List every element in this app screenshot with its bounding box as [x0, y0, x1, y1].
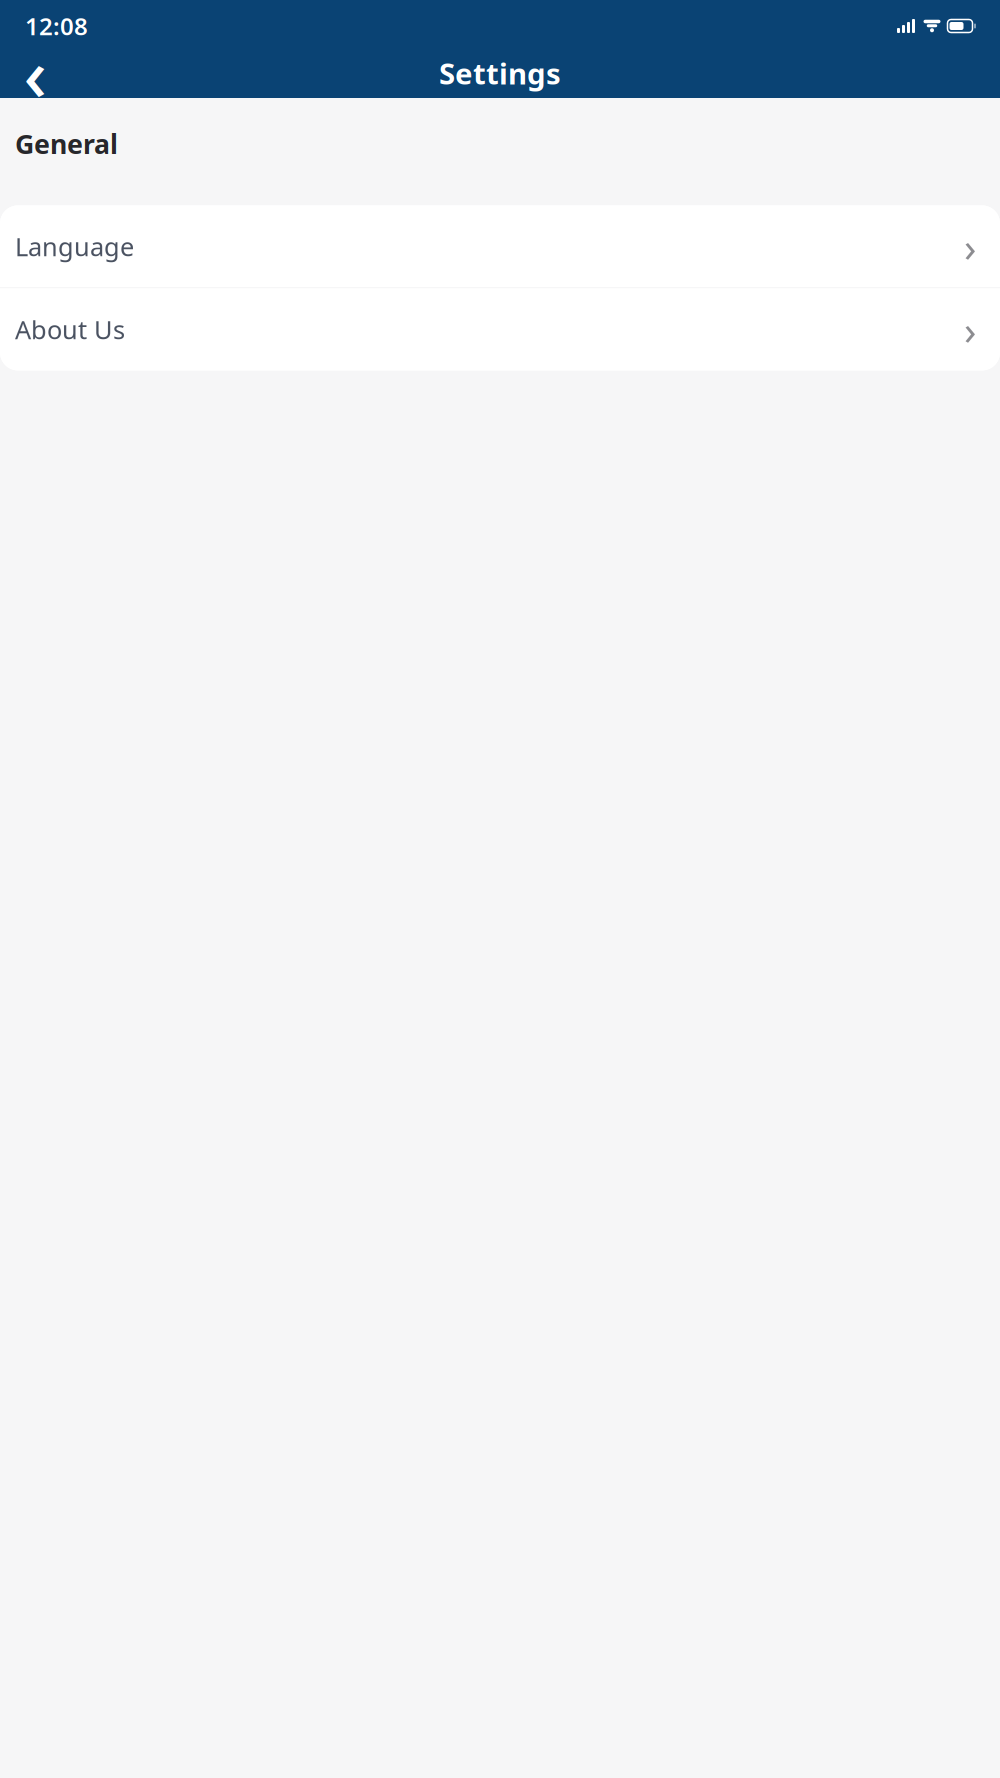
button[interactable]: About Us: [0, 288, 1000, 370]
button[interactable]: Language: [0, 205, 1000, 287]
staticText: ›: [964, 220, 976, 273]
staticText: 12:08: [25, 10, 88, 42]
staticText: General: [15, 126, 118, 161]
staticText: Settings: [439, 53, 561, 92]
staticText: ›: [964, 303, 976, 356]
staticText: Language: [15, 230, 134, 263]
staticText: About Us: [15, 313, 125, 346]
staticText: ‹: [23, 25, 46, 121]
button[interactable]: Back: [12, 51, 58, 95]
